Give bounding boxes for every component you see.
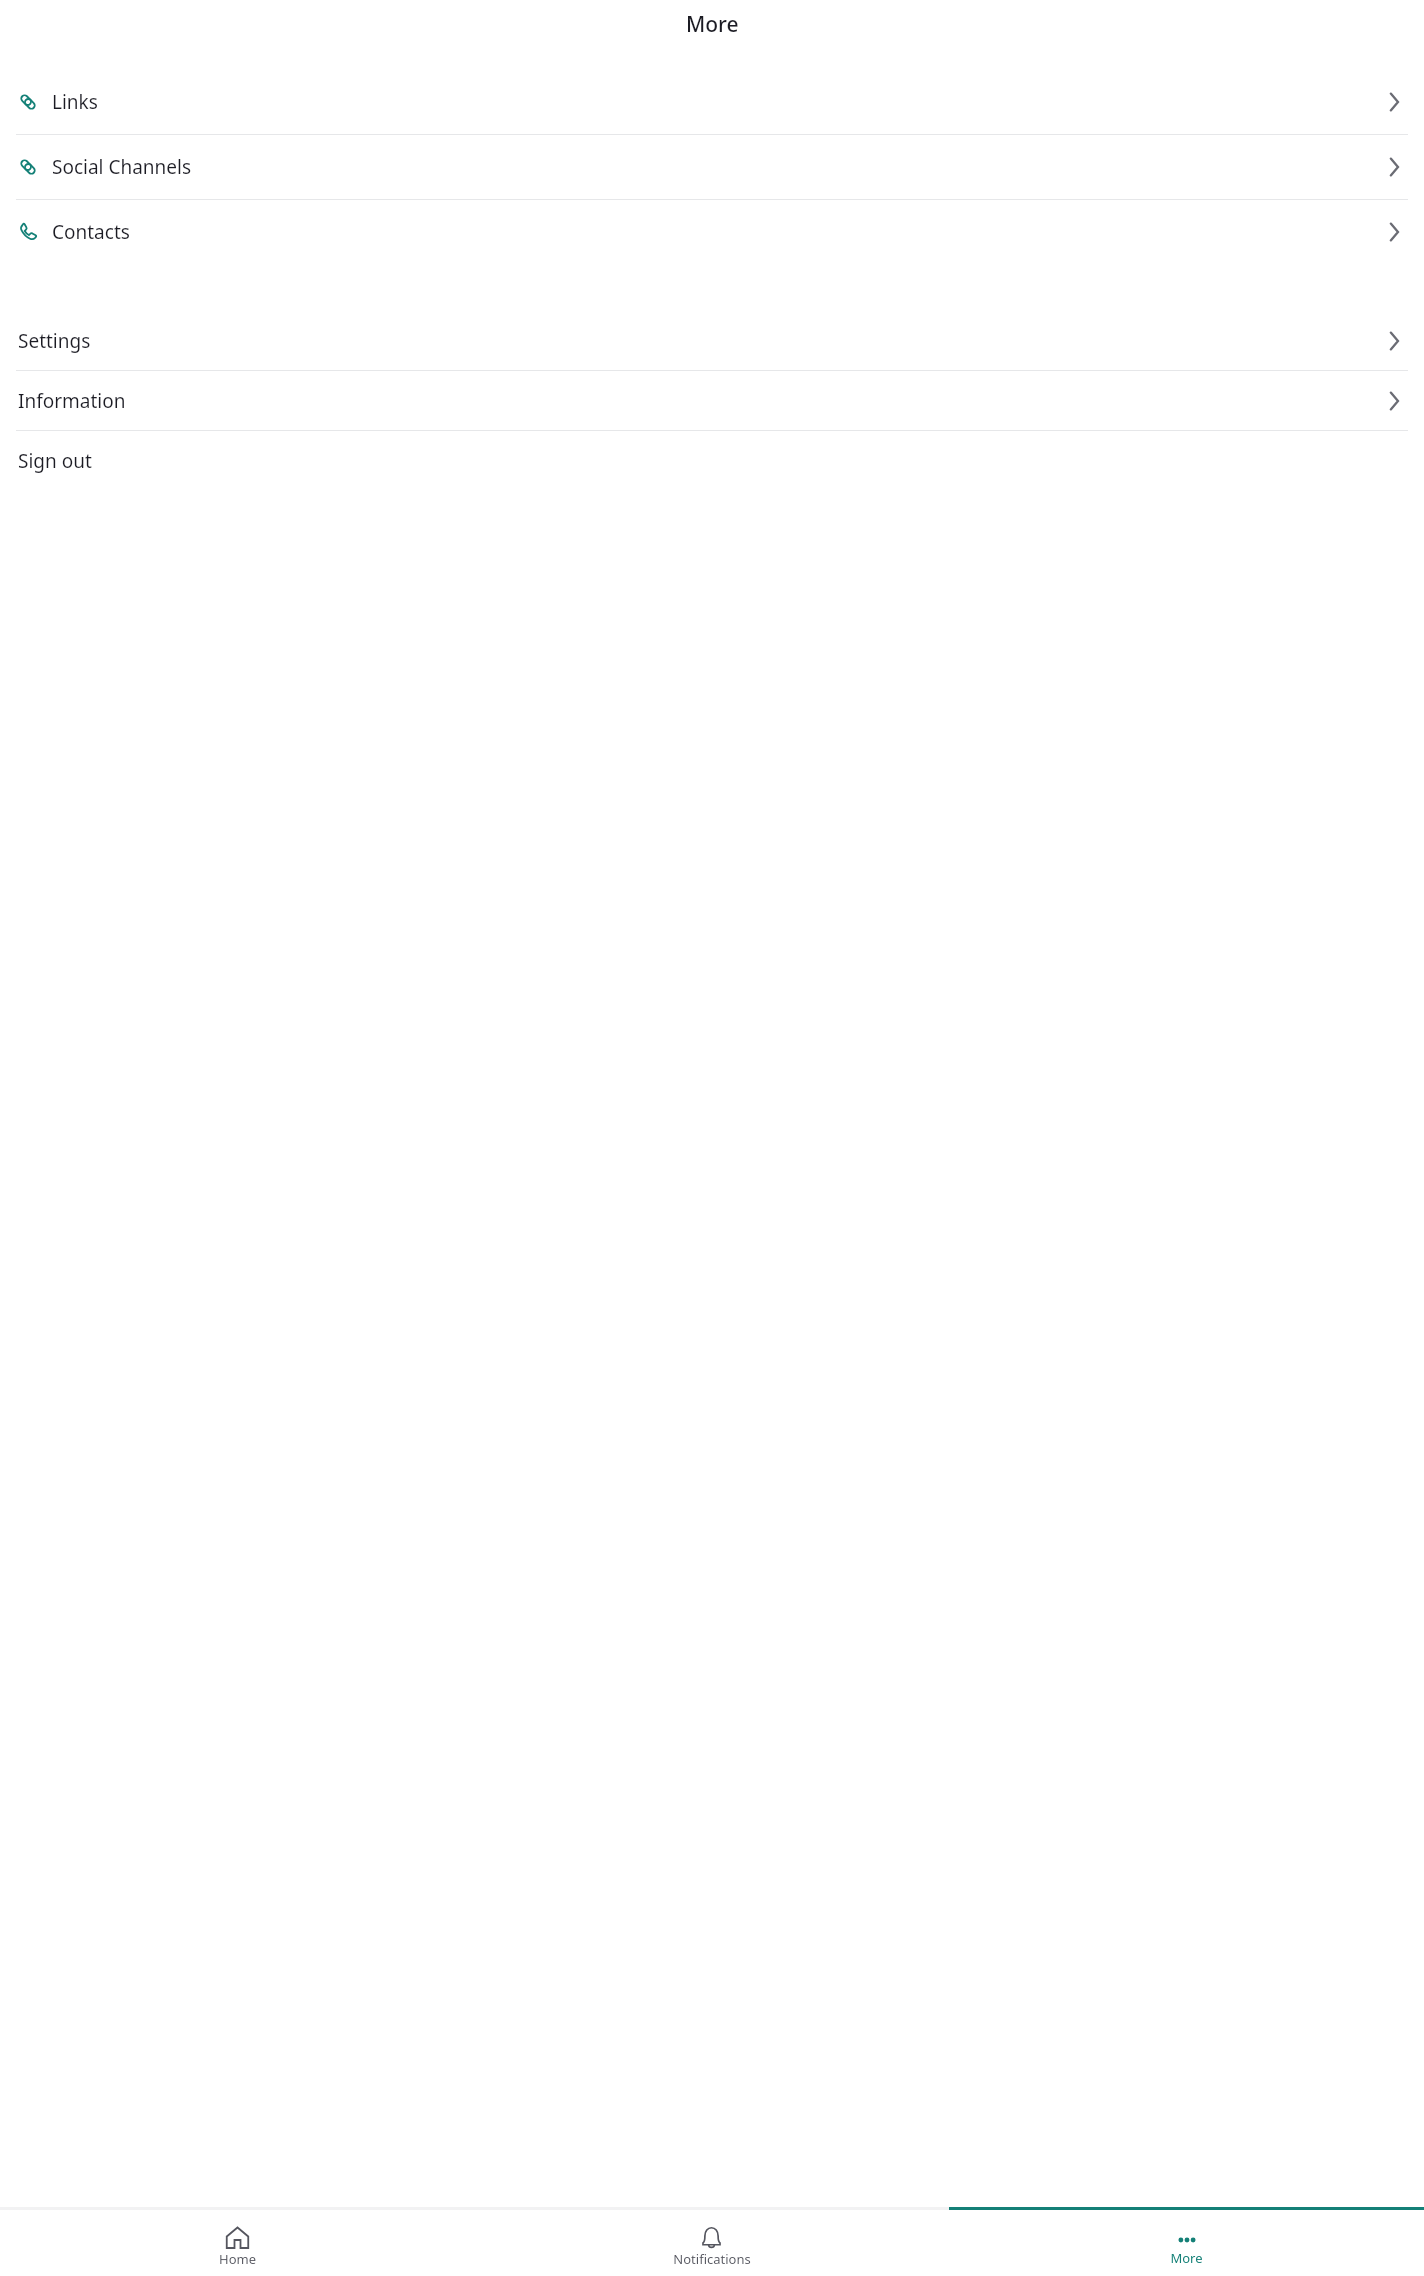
button[interactable]: Social Channels (0, 135, 1424, 199)
button[interactable]: Links (0, 70, 1424, 134)
button[interactable]: Settings (0, 311, 1424, 370)
button[interactable]: Information (0, 371, 1424, 430)
button[interactable]: Notifications (474, 2207, 949, 2276)
button[interactable]: Sign out (0, 431, 1424, 490)
button[interactable]: Home (0, 2207, 474, 2276)
staticText: Notifications (673, 2250, 751, 2268)
staticText: Home (219, 2250, 256, 2268)
staticText: Sign out (18, 448, 92, 474)
button[interactable]: More (949, 2207, 1424, 2276)
staticText: Settings (18, 328, 91, 354)
staticText: Information (18, 388, 126, 414)
staticText: Social Channels (52, 154, 192, 180)
staticText: Links (52, 89, 98, 115)
staticText: More (1170, 2249, 1203, 2267)
button[interactable]: Contacts (0, 200, 1424, 264)
staticText: Contacts (52, 219, 130, 245)
staticText: More (686, 10, 739, 39)
